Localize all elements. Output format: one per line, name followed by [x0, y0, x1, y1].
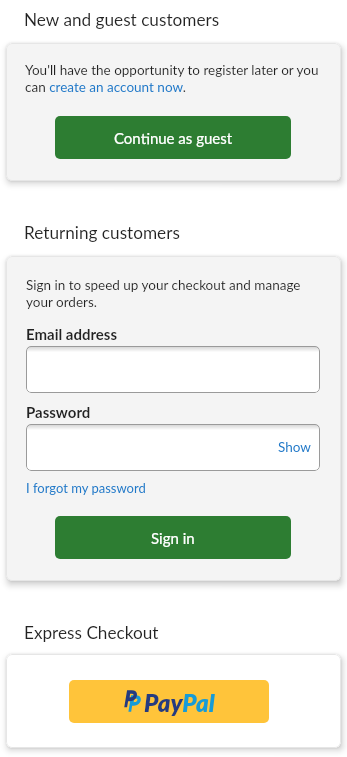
staticText: Email address	[26, 325, 118, 343]
button[interactable]: Sign in	[55, 516, 291, 559]
button[interactable]	[26, 346, 320, 393]
button[interactable]: Show	[278, 439, 311, 455]
staticText: Express Checkout	[24, 622, 159, 643]
staticText: Sign in	[151, 529, 195, 547]
staticText: Sign in to speed up your checkout and ma…	[26, 277, 311, 310]
staticText: Continue as guest	[114, 129, 233, 147]
staticText: Returning customers	[24, 222, 180, 243]
button[interactable]: Show	[26, 424, 320, 471]
staticText: New and guest customers	[24, 9, 220, 30]
staticText: You'll have the opportunity to register …	[25, 62, 321, 95]
button[interactable]: Continue as guest	[55, 116, 291, 159]
button[interactable]: Pay with PayPal	[69, 680, 269, 723]
staticText: PayPal	[144, 688, 215, 717]
button[interactable]: I forgot my password	[26, 480, 146, 496]
staticText: Password	[26, 403, 91, 421]
